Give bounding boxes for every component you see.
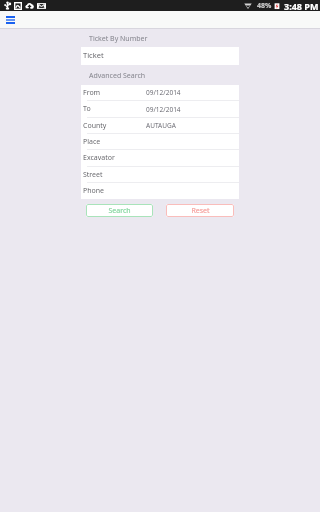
staticText: 09/12/2014 (146, 88, 239, 97)
staticText: Reset (191, 206, 210, 216)
button[interactable]: From (81, 85, 239, 100)
staticText: County (83, 121, 107, 131)
staticText: Street (83, 170, 103, 180)
staticText: Phone (83, 186, 105, 196)
button[interactable]: Search (86, 204, 153, 217)
staticText: Search (108, 206, 131, 216)
button[interactable]: Place (81, 133, 239, 149)
staticText: 48% (257, 1, 272, 11)
button[interactable]: Street (81, 166, 239, 182)
staticText: To (83, 104, 91, 114)
staticText: Ticket (83, 50, 104, 60)
button[interactable]: Phone (81, 182, 239, 199)
staticText: Place (83, 137, 101, 147)
staticText: Ticket By Number (89, 34, 148, 44)
button[interactable]: County (81, 117, 239, 133)
staticText: Excavator (83, 153, 115, 163)
button[interactable]: Reset (166, 204, 234, 217)
button[interactable]: To (81, 100, 239, 117)
staticText: From (83, 88, 101, 98)
button[interactable]: Excavator (81, 149, 239, 166)
staticText: AUTAUGA (146, 121, 239, 130)
staticText: 09/12/2014 (146, 105, 239, 114)
staticText: Advanced Search (89, 71, 146, 81)
staticText: 3:48 PM (284, 0, 319, 11)
button[interactable]: Open navigation menu (1, 11, 19, 29)
button[interactable]: Ticket (81, 47, 239, 65)
